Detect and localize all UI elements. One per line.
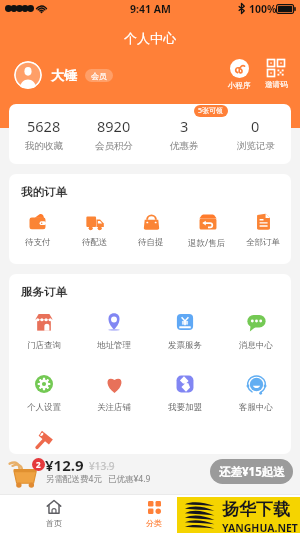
other: Mini program bbox=[230, 59, 249, 78]
staticText: 8920 bbox=[97, 116, 131, 136]
staticText: 扬华下载 bbox=[222, 499, 290, 520]
staticText: 另需配送费4元 bbox=[46, 473, 102, 485]
staticText: 3 bbox=[180, 116, 189, 136]
button[interactable]: Mini program bbox=[226, 59, 252, 90]
staticText: 门店查询 bbox=[27, 340, 61, 351]
staticText: 2 bbox=[36, 459, 41, 470]
staticText: 浏览记录 bbox=[237, 140, 275, 152]
staticText: 大锤 bbox=[51, 67, 77, 83]
button[interactable]: 8920 bbox=[79, 104, 149, 164]
staticText: 100% bbox=[249, 2, 277, 16]
staticText: 全部订单 bbox=[246, 237, 280, 248]
staticText: 小程序 bbox=[228, 81, 251, 90]
staticText: 消息中心 bbox=[239, 340, 273, 351]
button[interactable]: 发票服务 bbox=[149, 312, 220, 351]
button[interactable]: 分类 bbox=[108, 494, 200, 533]
button[interactable]: 关注店铺 bbox=[79, 374, 149, 413]
staticText: 待自提 bbox=[138, 237, 164, 248]
staticText: 我的订单 bbox=[21, 185, 67, 199]
staticText: 5628 bbox=[27, 116, 61, 136]
button[interactable]: Profile avatar bbox=[14, 61, 42, 89]
staticText: 9:41 AM bbox=[130, 2, 171, 16]
staticText: 待支付 bbox=[25, 237, 51, 248]
staticText: 5张可领 bbox=[198, 106, 224, 116]
staticText: 待配送 bbox=[82, 237, 108, 248]
button[interactable]: Invite QR code bbox=[263, 59, 289, 89]
button[interactable]: 退款/售后 bbox=[179, 212, 235, 249]
staticText: 我的收藏 bbox=[25, 140, 63, 152]
button[interactable]: 待自提 bbox=[123, 212, 179, 248]
button[interactable]: 地址管理 bbox=[79, 312, 149, 351]
staticText: 服务订单 bbox=[21, 285, 67, 299]
staticText: 0 bbox=[251, 116, 260, 136]
staticText: 优惠券 bbox=[170, 140, 199, 152]
button[interactable]: 3 bbox=[149, 104, 220, 164]
staticText: ¥13.9 bbox=[89, 459, 115, 473]
staticText: 退款/售后 bbox=[188, 237, 226, 249]
staticText: 地址管理 bbox=[97, 340, 131, 351]
button[interactable]: 还差¥15起送 bbox=[210, 459, 293, 484]
staticText: 会员 bbox=[91, 71, 107, 81]
staticText: 会员积分 bbox=[95, 140, 133, 152]
staticText: YANGHUA.NET bbox=[222, 521, 298, 533]
button[interactable]: 门店查询 bbox=[9, 312, 79, 351]
staticText: 我要加盟 bbox=[168, 402, 202, 413]
button[interactable]: 消息中心 bbox=[220, 312, 291, 351]
button[interactable]: 待支付 bbox=[9, 212, 66, 248]
button[interactable]: 0 bbox=[220, 104, 291, 164]
button[interactable]: 全部订单 bbox=[235, 212, 291, 248]
staticText: 客服中心 bbox=[239, 402, 273, 413]
staticText: 还差¥15起送 bbox=[219, 464, 285, 480]
staticText: 已优惠¥4.9 bbox=[108, 473, 151, 485]
other: Shopping cart bbox=[8, 456, 40, 488]
button[interactable]: 我要加盟 bbox=[149, 374, 220, 413]
staticText: 首页 bbox=[46, 518, 62, 528]
button[interactable]: 客服中心 bbox=[220, 374, 291, 413]
staticText: 个人设置 bbox=[27, 402, 61, 413]
button[interactable]: 5628 bbox=[9, 104, 79, 164]
staticText: 购物车 bbox=[234, 518, 258, 528]
staticText: 发票服务 bbox=[168, 340, 202, 351]
button[interactable]: 购物车 bbox=[200, 494, 292, 533]
staticText: 分类 bbox=[146, 518, 162, 528]
button[interactable]: 待配送 bbox=[66, 212, 123, 248]
other: Invite QR code bbox=[267, 59, 285, 77]
staticText: 关注店铺 bbox=[97, 402, 131, 413]
staticText: 邀请码 bbox=[265, 80, 288, 89]
staticText: ¥12.9 bbox=[45, 455, 84, 475]
button[interactable]: 首页 bbox=[0, 494, 108, 533]
staticText: 个人中心 bbox=[124, 30, 176, 46]
button[interactable]: 个人设置 bbox=[9, 374, 79, 413]
